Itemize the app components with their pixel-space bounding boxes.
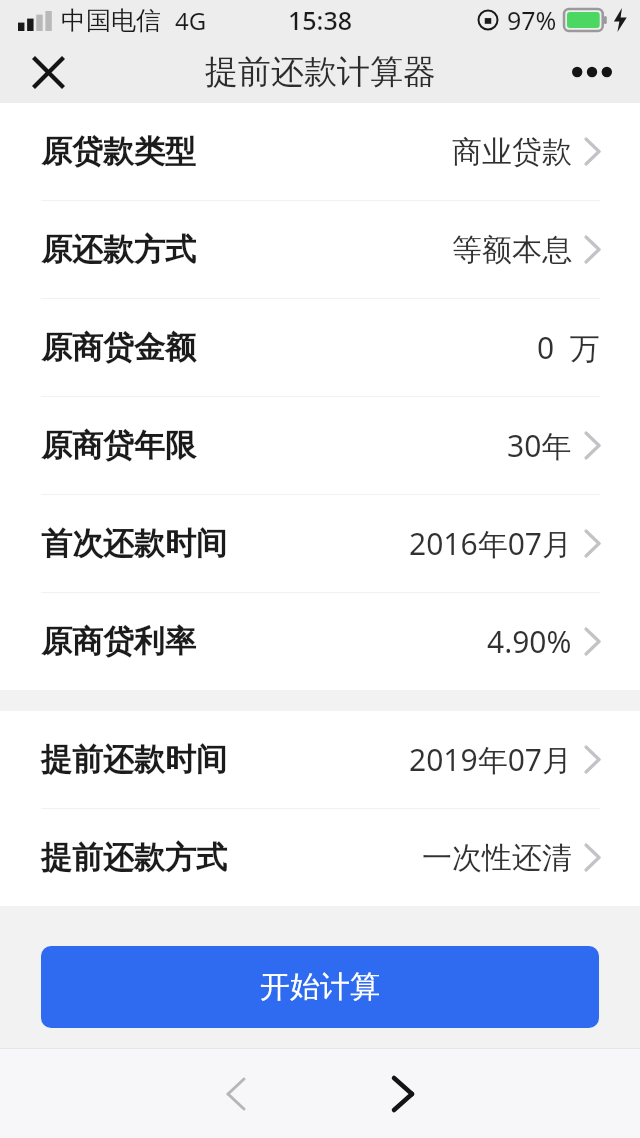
staticText: 一次性还清 xyxy=(422,839,572,877)
button[interactable]: More options xyxy=(560,44,624,100)
button[interactable]: Close xyxy=(20,44,76,100)
staticText: 30年 xyxy=(507,425,572,466)
button[interactable]: 原商贷金额 xyxy=(0,299,640,397)
staticText: 商业贷款 xyxy=(452,133,572,171)
button[interactable]: 原贷款类型 xyxy=(0,103,640,201)
staticText: 97% xyxy=(507,3,557,37)
button[interactable]: 原商贷年限 xyxy=(0,397,640,495)
staticText: 开始计算 xyxy=(260,968,380,1006)
staticText: 提前还款方式 xyxy=(41,838,227,877)
staticText: 4.90% xyxy=(487,621,572,662)
staticText: 4G xyxy=(175,4,207,37)
button[interactable]: 首次还款时间 xyxy=(0,495,640,593)
staticText: 2016年07月 xyxy=(409,523,572,564)
staticText: 首次还款时间 xyxy=(41,524,227,563)
staticText: 原商贷金额 xyxy=(41,328,196,367)
staticText: 提前还款计算器 xyxy=(205,51,436,93)
staticText: 2019年07月 xyxy=(409,739,572,780)
staticText: 0 万 xyxy=(537,327,600,368)
staticText: 提前还款时间 xyxy=(41,740,227,779)
button[interactable]: 提前还款时间 xyxy=(0,711,640,809)
staticText: 原商贷年限 xyxy=(41,426,196,465)
staticText: 原商贷利率 xyxy=(41,622,196,661)
button[interactable]: 提前还款方式 xyxy=(0,809,640,906)
staticText: 等额本息 xyxy=(452,231,572,269)
staticText: 中国电信 xyxy=(61,5,161,36)
button[interactable]: Forward xyxy=(363,1054,443,1134)
staticText: 原还款方式 xyxy=(41,230,196,269)
staticText: 15:38 xyxy=(288,3,353,37)
staticText: 原贷款类型 xyxy=(41,132,196,171)
button[interactable]: 原商贷利率 xyxy=(0,593,640,690)
button[interactable]: Back xyxy=(196,1054,276,1134)
button[interactable]: 原还款方式 xyxy=(0,201,640,299)
button[interactable]: 开始计算 xyxy=(41,946,599,1028)
